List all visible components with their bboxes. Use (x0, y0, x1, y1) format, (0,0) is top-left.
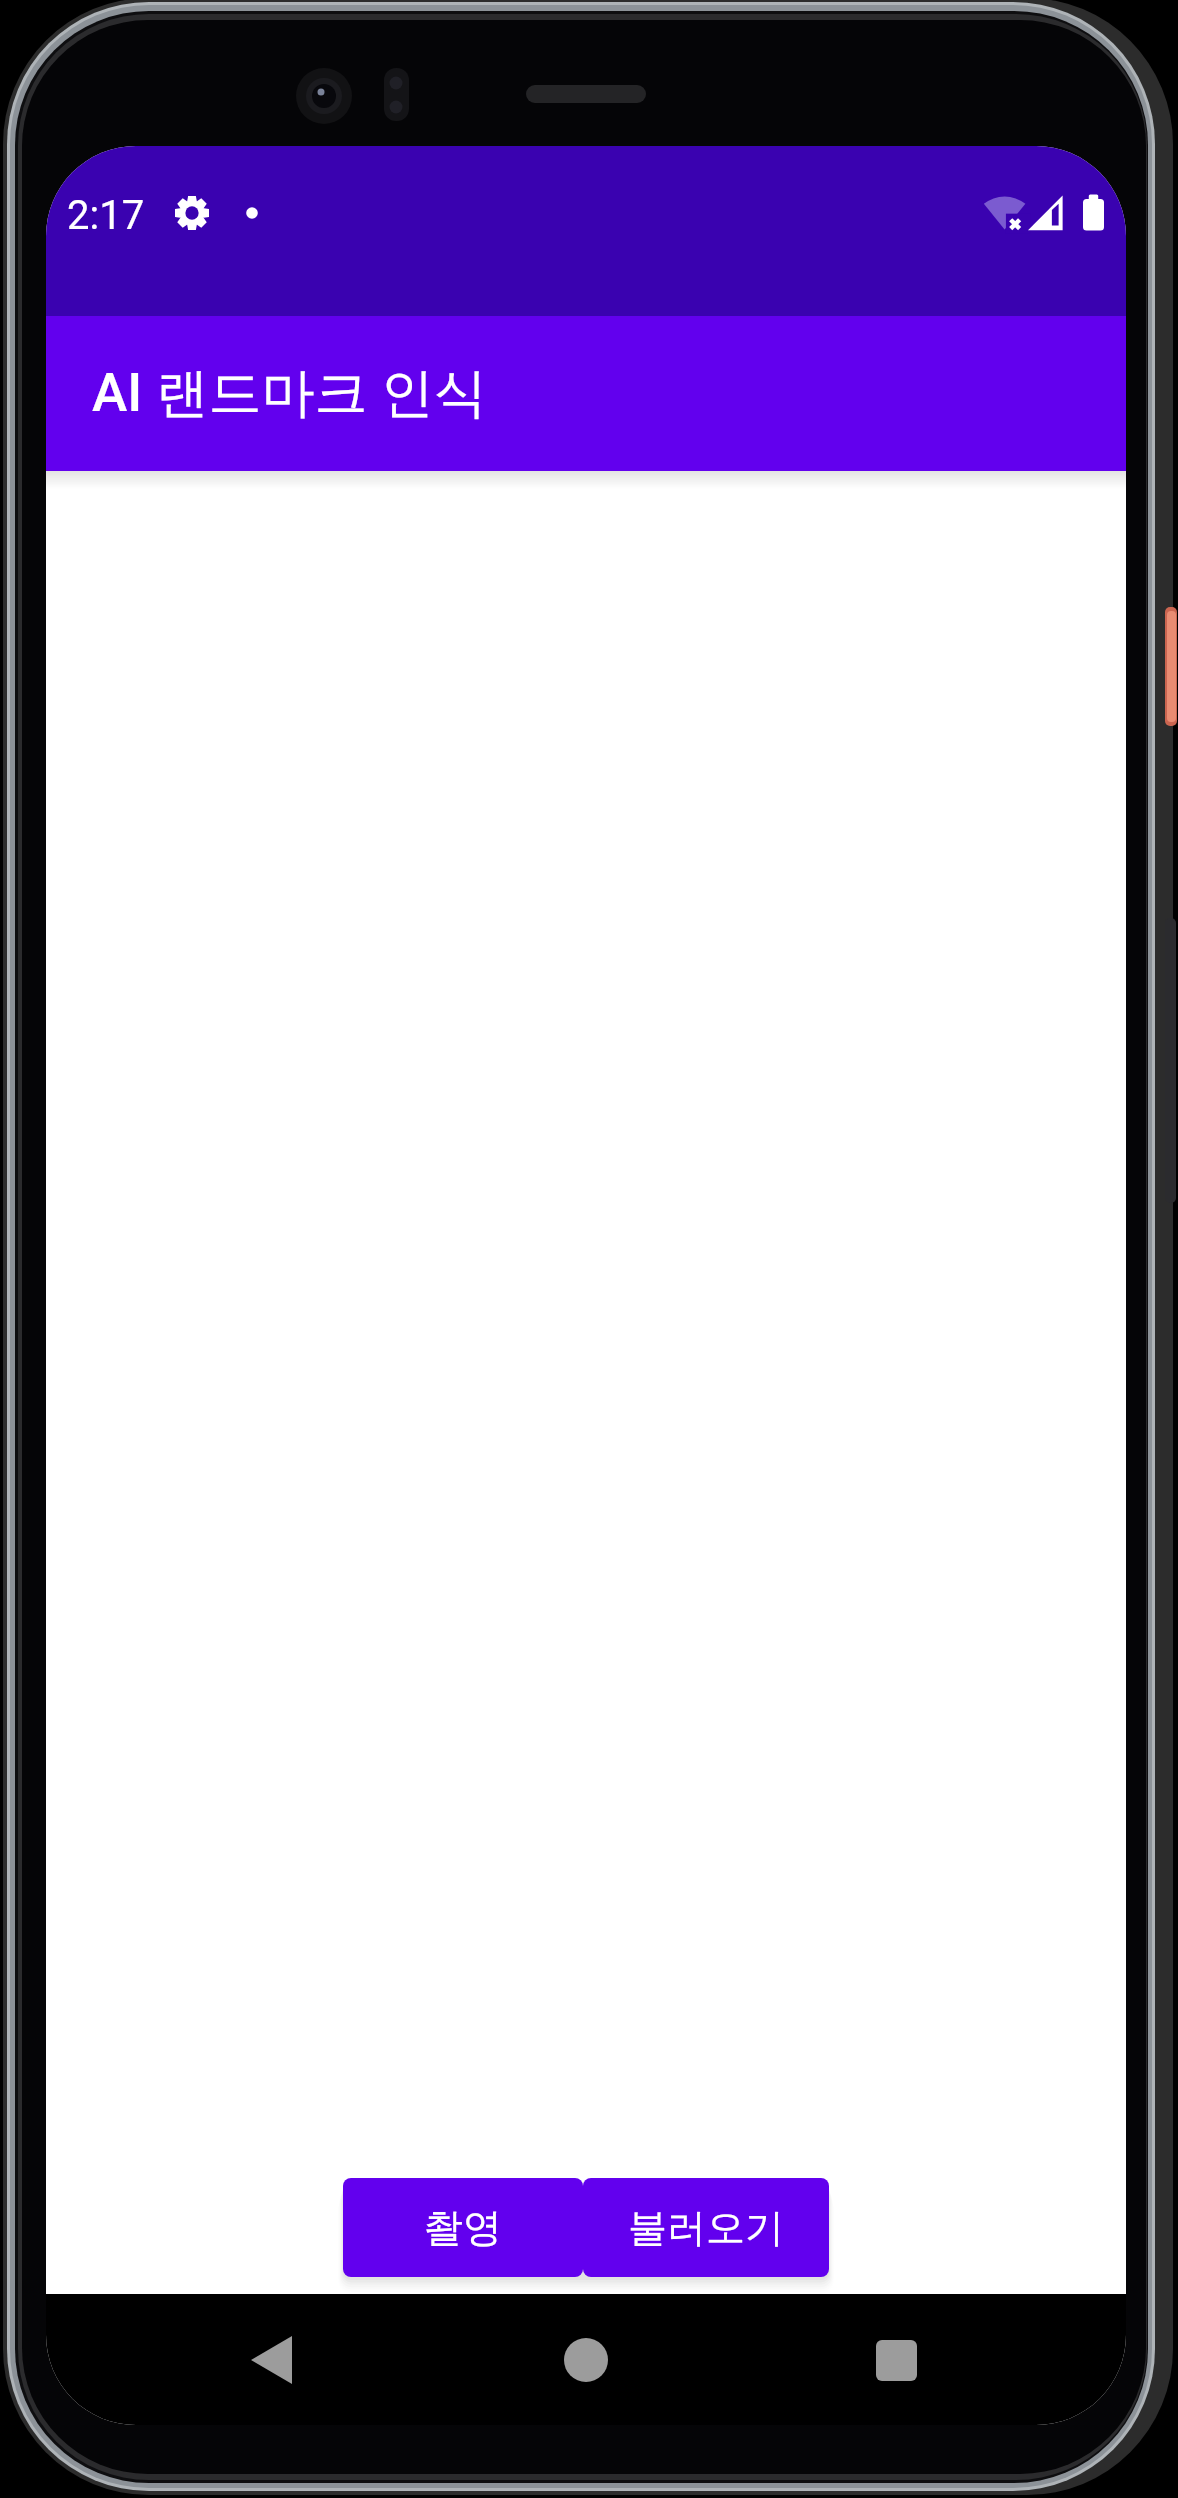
staticText: AI 랜드마크 인식 (92, 360, 487, 427)
button[interactable]: Back (232, 2318, 311, 2402)
staticText: 촬영 (424, 2203, 502, 2252)
staticText: 2:17 (67, 192, 145, 239)
button[interactable]: Recent apps (857, 2318, 936, 2402)
button[interactable]: 불러오기 (583, 2178, 829, 2277)
staticText: 불러오기 (628, 2203, 784, 2252)
button[interactable]: 촬영 (343, 2178, 583, 2277)
button[interactable]: Home (547, 2318, 626, 2402)
